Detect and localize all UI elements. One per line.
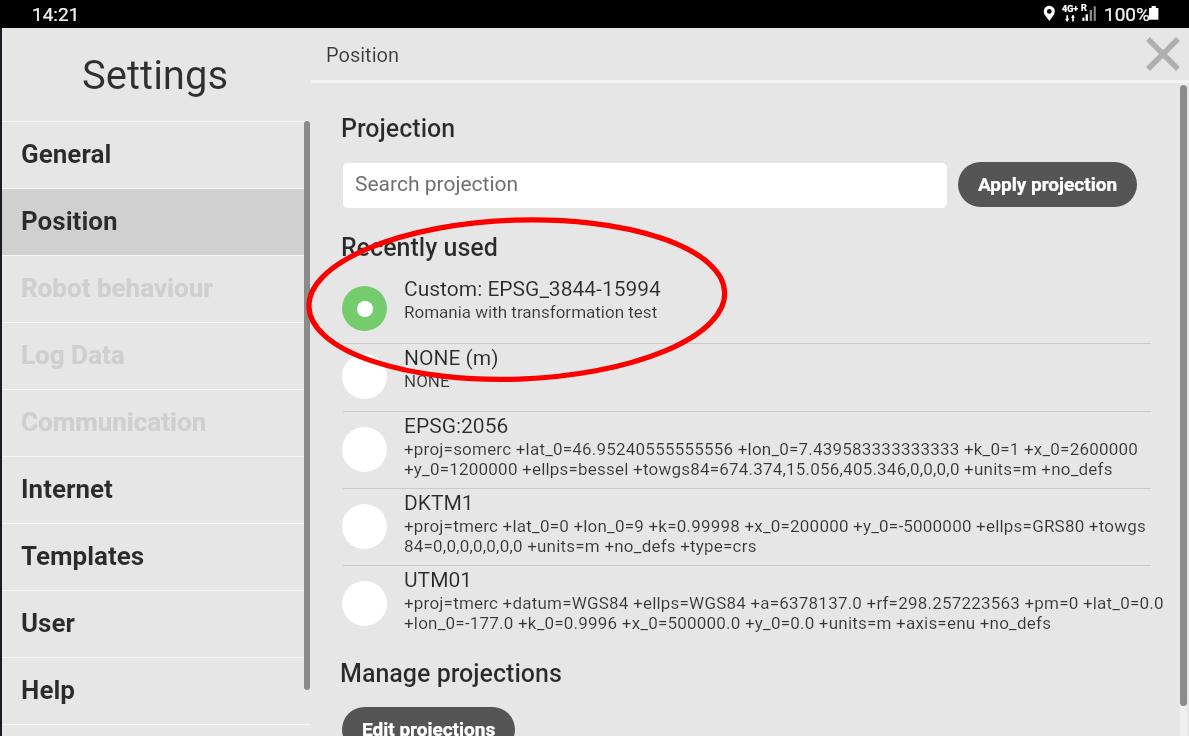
staticText: Custom: EPSG_3844-15994 [404, 277, 661, 302]
staticText: General [21, 139, 112, 169]
staticText: Manage projections [340, 659, 562, 688]
button[interactable]: Robot behaviour [0, 256, 310, 322]
button[interactable]: DKTM1 [343, 488, 1151, 565]
staticText: 100% [1104, 3, 1150, 25]
staticText: R [1081, 3, 1087, 14]
staticText: Log Data [21, 340, 125, 370]
staticText: Position [21, 206, 118, 236]
button[interactable]: General [0, 122, 310, 188]
staticText: Projection [341, 114, 456, 143]
button[interactable]: Communication [0, 390, 310, 456]
button[interactable]: Help [0, 658, 310, 724]
button[interactable]: Close [1140, 31, 1186, 77]
staticText: +y_0=1200000 +ellps=bessel +towgs84=674.… [404, 459, 1113, 479]
button[interactable]: Templates [0, 524, 310, 590]
staticText: User [21, 608, 76, 638]
button[interactable]: Custom: EPSG_3844-15994 [343, 274, 1151, 343]
button[interactable]: NONE (m) [343, 343, 1151, 411]
button[interactable]: User [0, 591, 310, 657]
staticText: Internet [21, 474, 113, 504]
staticText: UTM01 [404, 568, 473, 593]
button[interactable]: About [0, 725, 310, 736]
staticText: Edit projections [362, 718, 496, 736]
staticText: +proj=tmerc +datum=WGS84 +ellps=WGS84 +a… [404, 593, 1164, 613]
staticText: 4G+ [1062, 4, 1079, 15]
staticText: Apply projection [978, 173, 1118, 195]
staticText: Romania with transformation test [404, 302, 658, 322]
staticText: 14:21 [32, 3, 80, 25]
button[interactable]: EPSG:2056 [343, 411, 1151, 488]
button[interactable]: Position [0, 189, 310, 255]
staticText: Templates [21, 541, 145, 571]
button[interactable]: Edit projections [342, 707, 515, 736]
button[interactable]: UTM01 [343, 565, 1151, 642]
staticText: +lon_0=-177.0 +k_0=0.9996 +x_0=500000.0 … [404, 613, 1052, 633]
staticText: Robot behaviour [21, 273, 213, 303]
staticText: 84=0,0,0,0,0,0,0 +units=m +no_defs +type… [404, 536, 757, 556]
staticText: Help [21, 675, 75, 705]
staticText: +proj=somerc +lat_0=46.95240555555556 +l… [404, 439, 1139, 459]
button[interactable]: Apply projection [958, 162, 1137, 207]
button[interactable]: Search projection [343, 163, 947, 208]
button[interactable]: Internet [0, 457, 310, 523]
staticText: NONE (m) [404, 346, 499, 371]
staticText: NONE [404, 371, 450, 391]
staticText: Settings [82, 52, 229, 99]
button[interactable]: Log Data [0, 323, 310, 389]
staticText: EPSG:2056 [404, 414, 509, 439]
staticText: Recently used [341, 233, 498, 262]
staticText: DKTM1 [404, 491, 474, 516]
staticText: Search projection [355, 172, 519, 197]
staticText: Communication [21, 407, 207, 437]
staticText: +proj=tmerc +lat_0=0 +lon_0=9 +k=0.99998… [404, 516, 1146, 536]
staticText: Position [326, 43, 399, 66]
